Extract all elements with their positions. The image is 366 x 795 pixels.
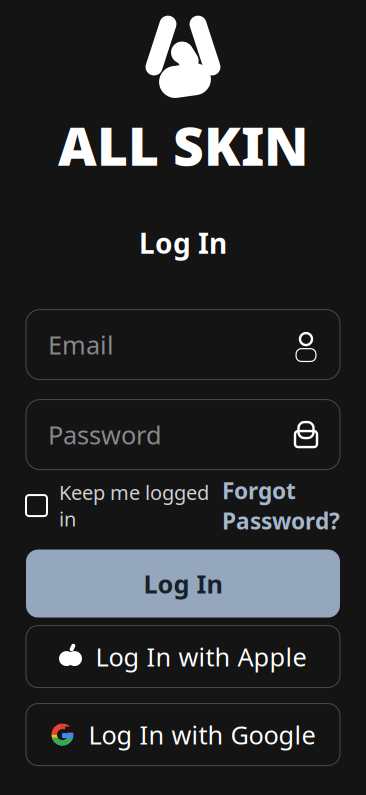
staticText: Log In [139, 224, 227, 262]
button[interactable]: Forgot Password? [222, 475, 340, 536]
button[interactable]: Log In [26, 550, 340, 618]
staticText: Password [48, 418, 162, 451]
staticText: Forgot Password? [222, 475, 340, 536]
staticText: Keep me logged in [59, 479, 209, 532]
button[interactable]: Password [0, 400, 366, 470]
staticText: ALL SKIN [58, 110, 308, 180]
button[interactable]: Keep me logged in [26, 479, 209, 532]
staticText: Log In with Apple [95, 640, 306, 673]
staticText: Log In with Google [88, 718, 315, 751]
button[interactable]: Email [0, 310, 366, 380]
staticText: Log In [143, 567, 222, 600]
button[interactable]: Log In with Apple [26, 626, 340, 688]
button[interactable]: Log In with Google [26, 704, 340, 766]
staticText: Email [48, 328, 114, 361]
